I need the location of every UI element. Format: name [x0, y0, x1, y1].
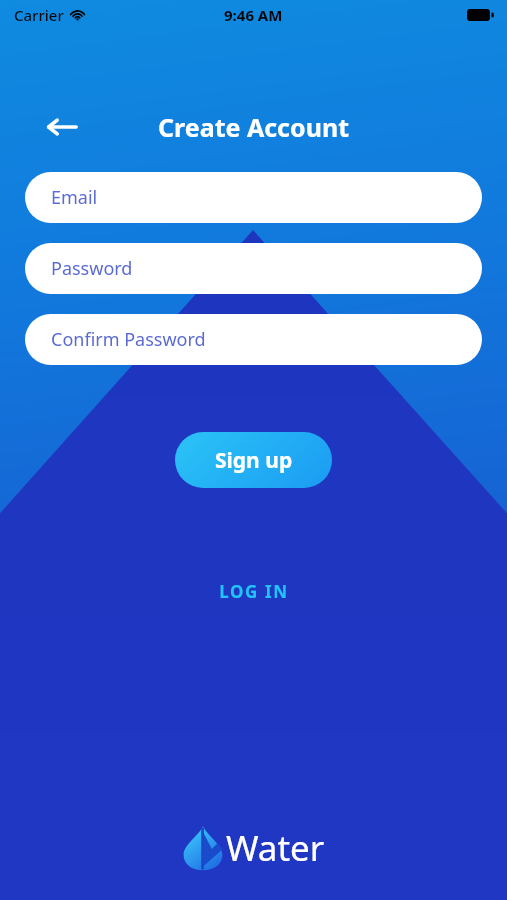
button[interactable]: LOG IN	[203, 572, 305, 611]
staticText: Email	[51, 185, 98, 210]
staticText: Create Account	[158, 110, 349, 144]
staticText: 9:46 AM	[224, 5, 283, 25]
button[interactable]: Confirm Password	[25, 314, 482, 365]
staticText: Confirm Password	[51, 327, 206, 352]
staticText: Carrier	[14, 5, 64, 25]
button[interactable]: Back	[40, 106, 84, 148]
staticText: Password	[51, 256, 133, 281]
staticText: LOG IN	[219, 580, 289, 603]
staticText: Sign up	[215, 446, 293, 475]
button[interactable]: Sign up	[175, 432, 332, 488]
staticText: Water	[226, 824, 325, 872]
button[interactable]: Email	[25, 172, 482, 223]
button[interactable]: Password	[25, 243, 482, 294]
